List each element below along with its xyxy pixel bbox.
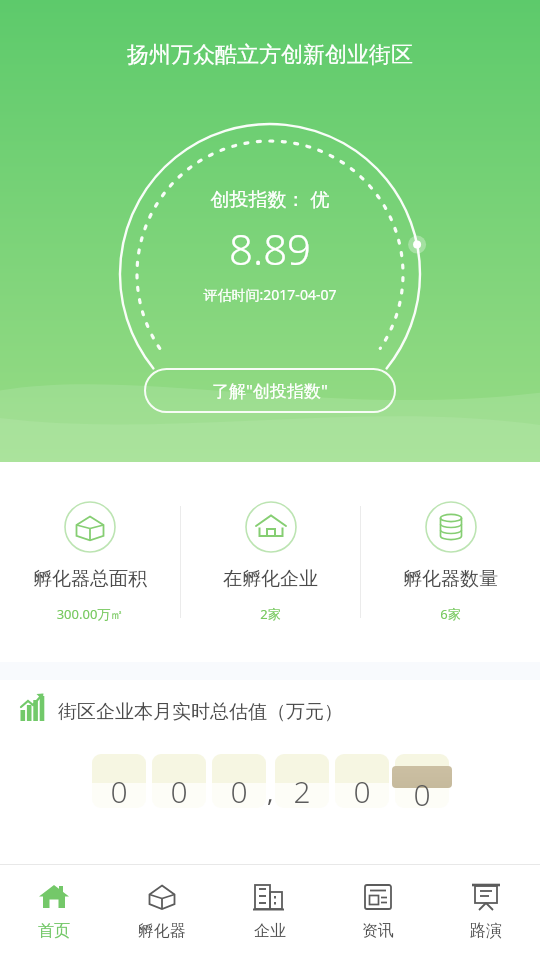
button[interactable]: 在孵化企业 <box>181 501 360 623</box>
staticText: 孵化器总面积 <box>0 567 180 591</box>
staticText: 孵化器数量 <box>361 567 540 591</box>
staticText: 资讯 <box>324 921 432 941</box>
staticText: 街区企业本月实时总估值（万元） <box>58 700 343 724</box>
staticText: 2家 <box>181 605 360 623</box>
staticText: 300.00万㎡ <box>0 605 180 623</box>
button[interactable]: 孵化器数量 <box>361 501 540 623</box>
staticText: , <box>267 776 274 809</box>
staticText: 在孵化企业 <box>181 567 360 591</box>
staticText: 了解"创投指数" <box>144 379 396 402</box>
button[interactable]: 了解"创投指数" <box>144 368 396 413</box>
staticText: 0 <box>413 774 431 815</box>
button[interactable]: 孵化器总面积 <box>0 501 180 623</box>
button[interactable]: 首页 <box>0 865 108 941</box>
staticText: 8.89 <box>0 220 540 277</box>
staticText: 0 <box>353 771 371 812</box>
staticText: 企业 <box>216 921 324 941</box>
staticText: 孵化器 <box>108 921 216 941</box>
staticText: 6家 <box>361 605 540 623</box>
button[interactable]: 街区企业本月实时总估值（万元） <box>16 696 540 728</box>
button[interactable]: 路演 <box>432 865 540 941</box>
button[interactable]: 企业 <box>216 865 324 941</box>
staticText: 0 <box>110 771 128 812</box>
button[interactable]: 孵化器 <box>108 865 216 941</box>
staticText: 0 <box>170 771 188 812</box>
button[interactable]: 资讯 <box>324 865 432 941</box>
staticText: 评估时间:2017-04-07 <box>0 285 540 304</box>
staticText: 首页 <box>0 921 108 941</box>
staticText: 扬州万众酷立方创新创业街区 <box>127 41 413 69</box>
staticText: 0 <box>230 771 248 812</box>
staticText: 创投指数： 优 <box>0 186 540 212</box>
staticText: 路演 <box>432 921 540 941</box>
staticText: 2 <box>293 771 311 812</box>
